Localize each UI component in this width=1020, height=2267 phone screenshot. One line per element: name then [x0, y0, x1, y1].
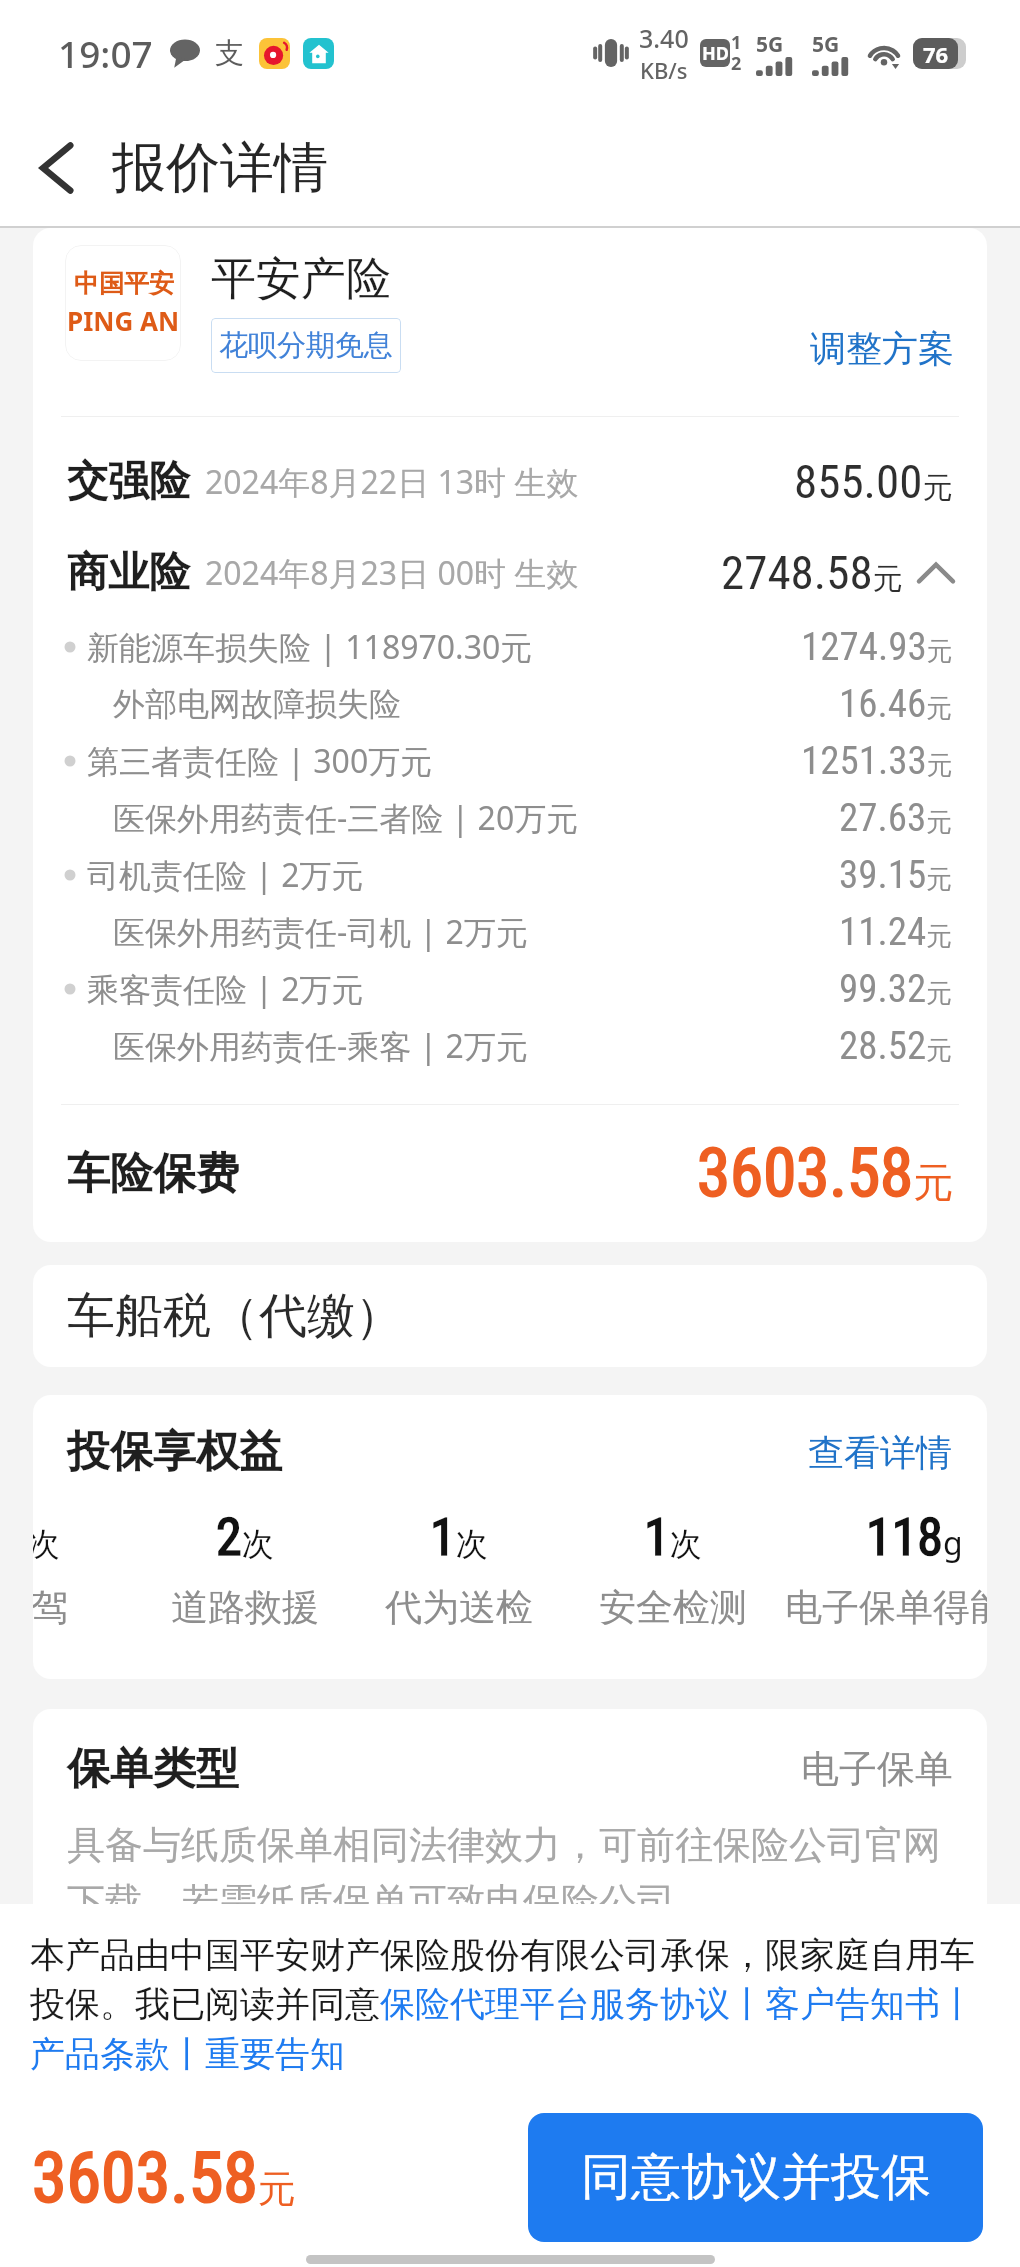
staticText: 2次 — [216, 1507, 274, 1568]
staticText: 乘客责任险 | 2万元 — [87, 967, 364, 1011]
staticText: 3603.58元 — [697, 1134, 954, 1213]
staticText: 118g — [866, 1507, 963, 1568]
staticText: 第三者责任险 | 300万元 — [87, 739, 433, 783]
staticText: 28.52元 — [839, 1023, 953, 1069]
staticText: 1次 — [644, 1507, 702, 1568]
staticText: 3.40 — [639, 21, 689, 55]
staticText: 医保外用药责任-三者险 | 20万元 — [113, 796, 579, 840]
staticText: 支 — [215, 35, 244, 72]
staticText: HD — [702, 41, 729, 66]
staticText: 2024年8月23日 00时 生效 — [205, 551, 579, 595]
staticText: 本产品由中国平安财产保险股份有限公司承保，限家庭自用车投保。我已阅读并同意保险代… — [30, 1933, 1008, 2077]
staticText: 医保外用药责任-司机 | 2万元 — [113, 910, 528, 954]
staticText: 保单类型 — [67, 1742, 239, 1796]
button[interactable]: Back — [0, 110, 112, 226]
staticText: 新能源车损失险 | 118970.30元 — [87, 625, 533, 669]
staticText: 查看详情 — [808, 1430, 952, 1475]
button[interactable]: 查看详情 — [806, 1428, 954, 1477]
staticText: 投保享权益 — [67, 1425, 282, 1479]
button[interactable]: 花呗分期免息 — [211, 318, 401, 373]
staticText: 3603.58元 — [32, 2137, 296, 2219]
staticText: 商业险 — [67, 547, 190, 599]
staticText: 11.24元 — [839, 909, 953, 955]
staticText: 1 — [731, 30, 742, 55]
staticText: 3次 — [33, 1507, 60, 1568]
staticText: 5G — [812, 30, 840, 59]
staticText: 车险保费 — [67, 1147, 239, 1201]
staticText: 道路救援 — [171, 1584, 319, 1631]
staticText: 电子保单得能量 — [785, 1584, 987, 1631]
staticText: 16.46元 — [839, 681, 953, 727]
button[interactable]: 同意协议并投保 — [528, 2113, 983, 2242]
staticText: 花呗分期免息 — [219, 327, 393, 364]
staticText: 交强险 — [67, 456, 190, 508]
staticText: 车船税（代缴） — [67, 1286, 403, 1346]
button[interactable]: 调整方案 — [810, 326, 954, 373]
staticText: 2 — [731, 51, 742, 76]
staticText: 2748.58元 — [721, 545, 903, 600]
staticText: PING AN — [67, 303, 180, 338]
staticText: 76 — [923, 39, 949, 69]
staticText: 司机责任险 | 2万元 — [87, 853, 364, 897]
staticText: 2024年8月22日 13时 生效 — [205, 460, 579, 504]
staticText: 39.15元 — [839, 852, 953, 898]
staticText: 调整方案 — [810, 326, 954, 371]
staticText: 医保外用药责任-乘客 | 2万元 — [113, 1024, 528, 1068]
staticText: 19:07 — [58, 28, 153, 78]
staticText: 具备与纸质保单相同法律效力，可前往保险公司官网下载，若需纸质保单可致电保险公司 — [67, 1821, 953, 1927]
staticText: 855.00元 — [794, 454, 953, 509]
staticText: 1274.93元 — [801, 624, 953, 670]
staticText: 5G — [756, 30, 784, 59]
staticText: 1251.33元 — [801, 738, 953, 784]
staticText: 平安产险 — [211, 251, 391, 308]
staticText: 电子保单 — [801, 1745, 953, 1793]
staticText: 27.63元 — [839, 795, 953, 841]
staticText: 代为送检 — [385, 1584, 533, 1631]
staticText: 外部电网故障损失险 — [113, 684, 401, 724]
staticText: 报价详情 — [112, 134, 328, 202]
staticText: 同意协议并投保 — [581, 2146, 931, 2209]
staticText: 代驾 — [33, 1584, 68, 1631]
staticText: 1次 — [430, 1507, 488, 1568]
staticText: 安全检测 — [599, 1584, 747, 1631]
staticText: 99.32元 — [839, 966, 953, 1012]
staticText: KB/s — [640, 55, 688, 85]
staticText: 中国平安 — [74, 268, 174, 299]
